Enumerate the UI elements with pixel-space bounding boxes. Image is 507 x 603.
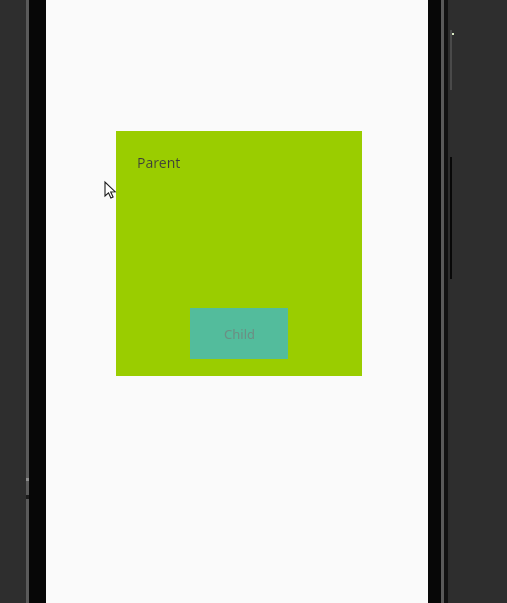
staticText: Parent [137,153,181,172]
button[interactable]: Child [190,308,288,359]
staticText: Child [224,325,255,343]
button[interactable]: Parent [116,131,362,376]
other: Pointer [105,182,119,201]
